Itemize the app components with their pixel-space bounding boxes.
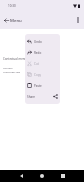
button[interactable]: Home <box>36 170 48 182</box>
staticText: Cut <box>34 62 39 66</box>
button[interactable]: Redo <box>25 47 60 58</box>
staticText: Paste <box>34 84 42 88</box>
button[interactable]: Back <box>15 170 27 182</box>
button[interactable]: Back <box>1 15 11 25</box>
staticText: Redo <box>34 51 42 55</box>
staticText: List item <box>3 66 13 69</box>
staticText: Contextual menu <box>3 57 27 61</box>
button[interactable]: Share <box>25 91 60 102</box>
button[interactable]: Copy <box>25 69 60 80</box>
staticText: 10:30 <box>8 4 16 8</box>
staticText: Long press me! <box>3 70 21 73</box>
button[interactable]: Paste <box>25 80 60 91</box>
staticText: Menu <box>10 17 22 23</box>
button[interactable]: Cut <box>25 58 60 69</box>
button[interactable]: Undo <box>25 36 60 47</box>
staticText: Share <box>27 95 36 99</box>
staticText: Copy <box>34 73 42 77</box>
button[interactable]: Recents <box>57 170 69 182</box>
staticText: Undo <box>34 40 42 44</box>
button[interactable]: More options <box>72 14 84 26</box>
